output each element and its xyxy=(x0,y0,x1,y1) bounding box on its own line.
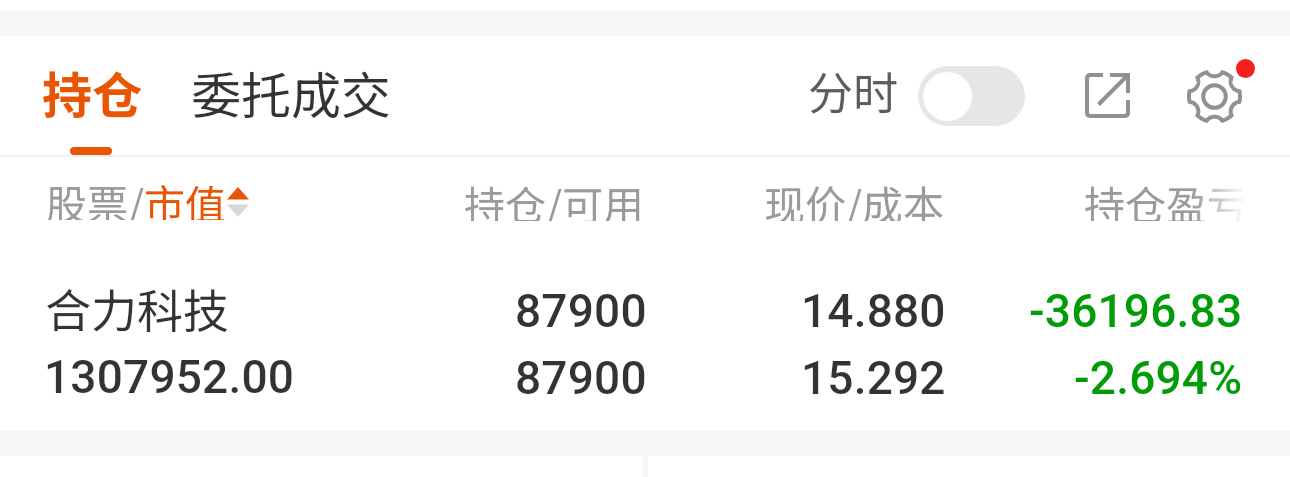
button[interactable]: 持仓盈亏 xyxy=(848,173,1248,221)
staticText: 股票/市值 xyxy=(46,172,227,220)
button[interactable]: 持仓/可用 xyxy=(245,173,645,221)
button[interactable]: Settings xyxy=(1180,56,1256,132)
button[interactable]: 分时 xyxy=(808,58,899,118)
staticText: 87900 xyxy=(515,284,647,338)
staticText: 15.292 xyxy=(801,351,946,405)
staticText: 持仓 xyxy=(42,56,142,120)
button[interactable]: Time-sharing chart toggle, off xyxy=(918,66,1025,126)
button[interactable]: Open in a new window xyxy=(1074,62,1140,128)
staticText: 委托成交 xyxy=(191,56,391,120)
staticText: -2.694% xyxy=(1074,351,1243,405)
button[interactable]: 委托成交 xyxy=(189,56,393,120)
button[interactable]: 持仓 xyxy=(40,56,144,120)
staticText: 持仓/可用 xyxy=(464,173,645,221)
button[interactable]: 股票/市值 xyxy=(46,172,249,220)
staticText: 1307952.00 xyxy=(44,350,295,404)
button[interactable]: 合力科技 xyxy=(0,258,1290,426)
button[interactable]: 现价/成本 xyxy=(545,173,945,221)
staticText: 合力科技 xyxy=(45,275,229,342)
staticText: 87900 xyxy=(515,351,647,405)
staticText: 持仓盈亏 xyxy=(1084,173,1248,221)
staticText: -36196.83 xyxy=(1029,284,1243,338)
staticText: 分时 xyxy=(808,58,899,118)
staticText: 现价/成本 xyxy=(764,173,945,221)
staticText: 14.880 xyxy=(801,284,946,338)
